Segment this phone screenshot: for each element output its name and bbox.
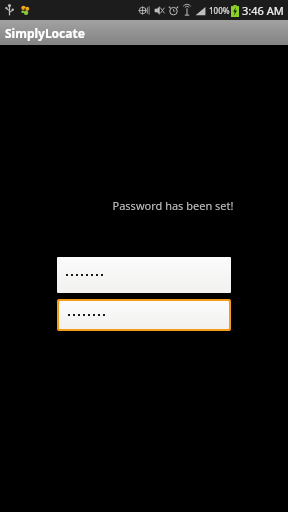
staticText: SimplyLocate — [5, 25, 85, 41]
button[interactable]: Confirm password field — [59, 301, 229, 329]
staticText: 3:46 AM — [242, 3, 284, 18]
staticText: Password has been set! — [58, 198, 288, 213]
staticText: 100% — [209, 5, 230, 16]
button[interactable]: Password field — [57, 257, 231, 293]
